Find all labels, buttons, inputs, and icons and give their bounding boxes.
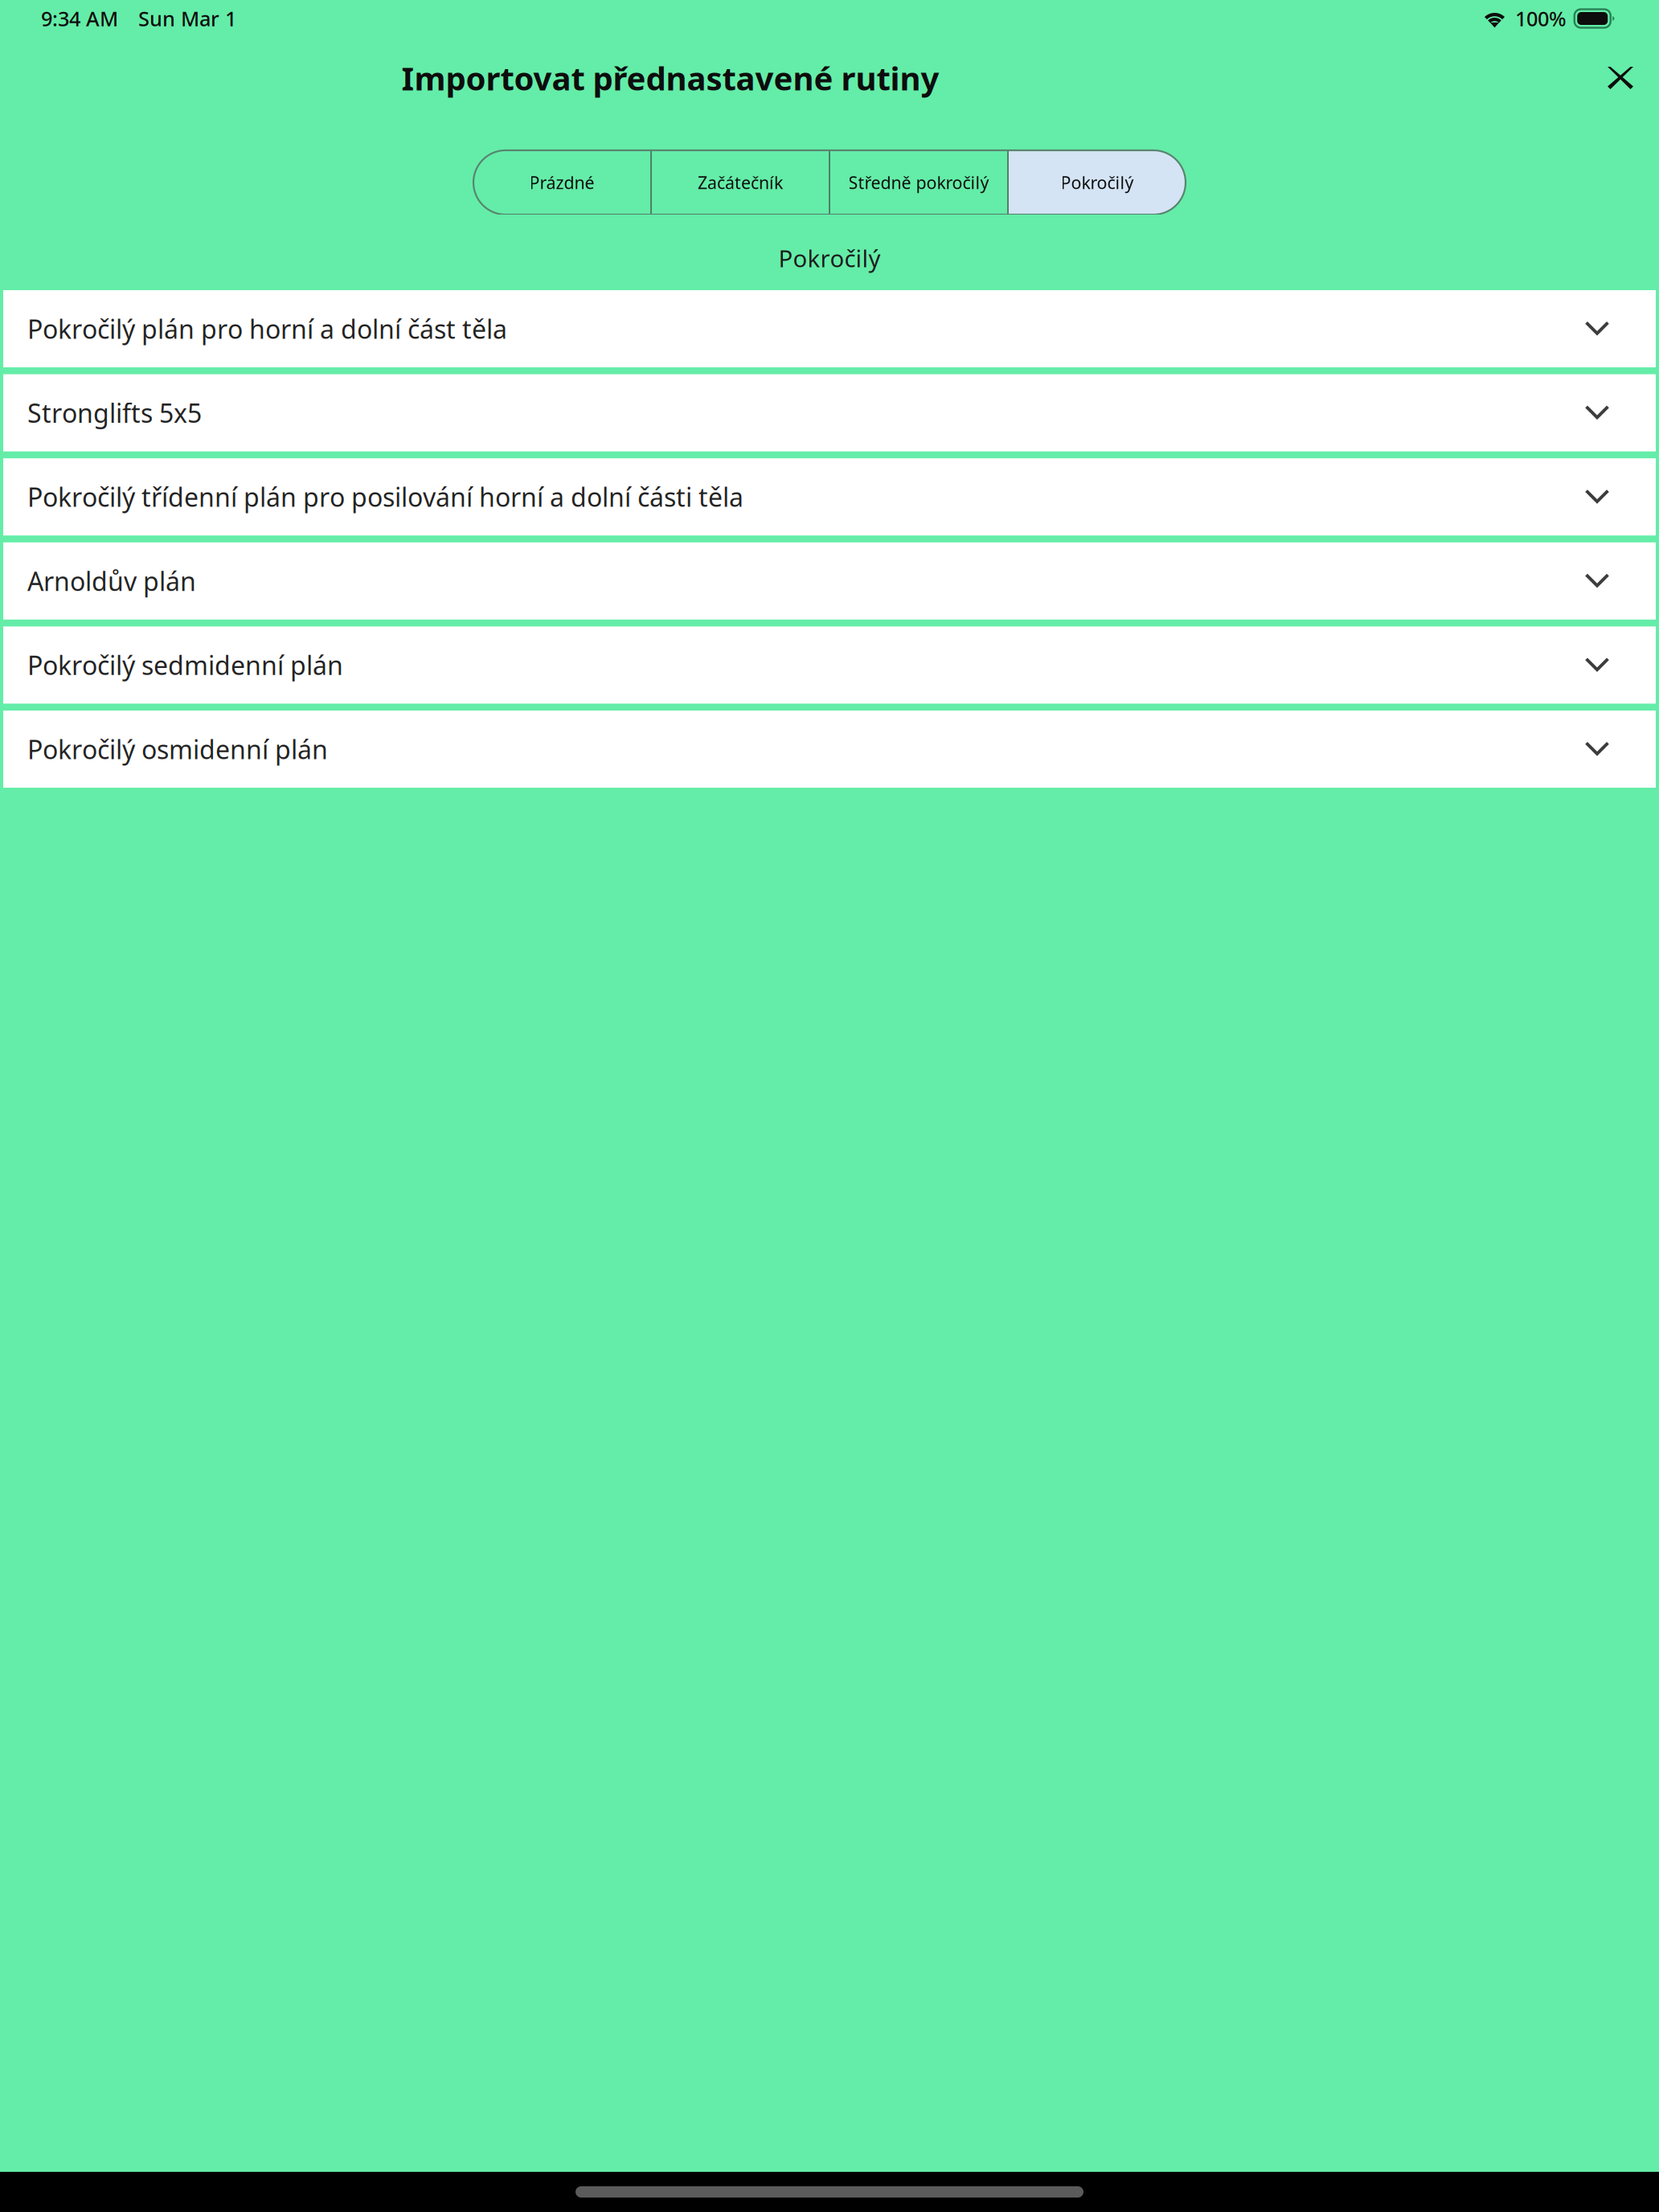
staticText: Pokročilý <box>778 242 881 274</box>
staticText: Pokročilý sedmidenní plán <box>27 648 343 682</box>
staticText: Začátečník <box>698 171 783 194</box>
staticText: Pokročilý <box>1061 171 1134 194</box>
button[interactable]: Stronglifts 5x5 <box>3 374 1656 451</box>
staticText: Středně pokročilý <box>848 171 989 194</box>
button[interactable]: Pokročilý plán pro horní a dolní část tě… <box>3 290 1656 367</box>
staticText: Sun Mar 1 <box>138 5 236 32</box>
button[interactable]: Prázdné <box>473 150 650 215</box>
staticText: Importovat přednastavené rutiny <box>401 57 939 99</box>
button[interactable]: Arnoldův plán <box>3 542 1656 620</box>
button[interactable]: Pokročilý sedmidenní plán <box>3 626 1656 704</box>
staticText: Arnoldův plán <box>27 564 196 598</box>
staticText: Stronglifts 5x5 <box>27 396 202 430</box>
button[interactable]: Zavřít <box>1606 65 1635 91</box>
staticText: Prázdné <box>529 171 594 194</box>
staticText: Pokročilý třídenní plán pro posilování h… <box>27 480 743 514</box>
staticText: 9:34 AM <box>41 5 118 32</box>
button[interactable]: Pokročilý osmidenní plán <box>3 711 1656 788</box>
button[interactable]: Začátečník <box>652 150 829 215</box>
staticText: 100% <box>1515 5 1567 32</box>
button[interactable]: Pokročilý <box>1009 150 1186 215</box>
button[interactable]: Středně pokročilý <box>830 150 1007 215</box>
staticText: Pokročilý osmidenní plán <box>27 732 328 766</box>
staticText: Pokročilý plán pro horní a dolní část tě… <box>27 312 507 346</box>
button[interactable]: Pokročilý třídenní plán pro posilování h… <box>3 458 1656 535</box>
